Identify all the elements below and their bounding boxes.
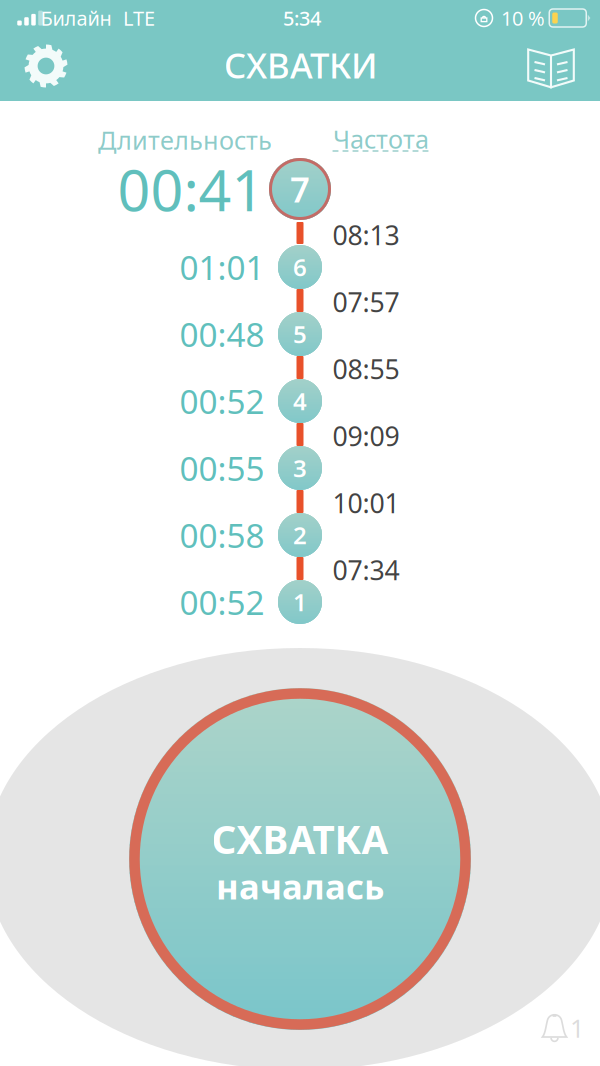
staticText: Длительность xyxy=(98,123,272,157)
staticText: 09:09 xyxy=(332,418,399,454)
staticText: LTE xyxy=(123,5,155,31)
staticText: 3 xyxy=(293,452,307,484)
staticText: 00:55 xyxy=(179,446,264,490)
button[interactable]: Справочник xyxy=(502,34,599,99)
staticText: 00:52 xyxy=(179,379,264,423)
staticText: 5:34 xyxy=(283,5,321,31)
staticText: 10:01 xyxy=(332,485,399,521)
staticText: 08:55 xyxy=(332,351,399,387)
staticText: СХВАТКА xyxy=(211,813,388,865)
staticText: 1 xyxy=(293,586,307,618)
staticText: 00:48 xyxy=(179,312,264,356)
staticText: началась xyxy=(216,863,384,909)
staticText: 10 % xyxy=(501,5,545,31)
staticText: 5 xyxy=(293,318,307,350)
button[interactable]: СХВАТКА xyxy=(128,687,472,1031)
staticText: 2 xyxy=(293,519,307,551)
button[interactable]: Настройки xyxy=(0,33,92,98)
staticText: 08:13 xyxy=(332,217,399,253)
staticText: 07:57 xyxy=(332,284,399,320)
staticText: 1 xyxy=(570,1011,584,1045)
staticText: СХВАТКИ xyxy=(224,42,378,88)
staticText: 00:52 xyxy=(179,580,264,624)
staticText: 7 xyxy=(290,166,310,212)
staticText: 4 xyxy=(293,385,307,417)
staticText: Частота xyxy=(333,122,429,156)
staticText: 6 xyxy=(293,251,307,283)
staticText: 00:58 xyxy=(179,513,264,557)
staticText: 00:41 xyxy=(117,151,264,227)
staticText: 07:34 xyxy=(332,552,399,588)
staticText: Билайн xyxy=(40,5,111,31)
staticText: 01:01 xyxy=(179,245,264,289)
